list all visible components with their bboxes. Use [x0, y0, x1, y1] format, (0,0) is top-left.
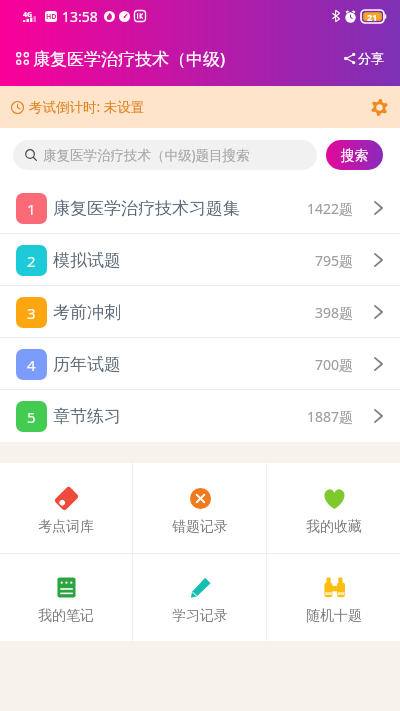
staticText: 随机十题	[306, 607, 362, 625]
staticText: 我的笔记	[38, 607, 94, 625]
staticText: 搜索	[341, 147, 368, 164]
button[interactable]: Settings	[368, 96, 390, 118]
button[interactable]: 错题记录	[133, 463, 266, 554]
button[interactable]: 我的笔记	[0, 554, 132, 641]
button[interactable]: 学习记录	[133, 554, 266, 641]
staticText: 章节练习	[53, 406, 121, 427]
button[interactable]: 康复医学治疗技术（中级)题目搜索	[13, 140, 317, 170]
staticText: 795题	[315, 251, 354, 270]
staticText: 模拟试题	[53, 250, 121, 271]
button[interactable]: 5	[0, 390, 400, 442]
staticText: 学习记录	[172, 607, 228, 625]
staticText: 4G	[23, 10, 33, 20]
staticText: 1887题	[307, 407, 354, 426]
staticText: 考前冲刺	[53, 302, 121, 323]
staticText: 700题	[315, 355, 354, 374]
staticText: 13:58	[62, 7, 98, 26]
staticText: 21	[367, 11, 378, 23]
staticText: 考试倒计时: 未设置	[29, 98, 145, 116]
button[interactable]: 搜索	[326, 140, 383, 170]
staticText: 分享	[358, 50, 384, 66]
staticText: 4	[27, 355, 36, 375]
button[interactable]: 1	[0, 182, 400, 234]
staticText: 2	[27, 251, 36, 271]
staticText: 1422题	[307, 199, 354, 218]
staticText: 康复医学治疗技术（中级)	[33, 47, 226, 70]
staticText: 1	[27, 199, 36, 219]
staticText: HD	[46, 12, 57, 22]
staticText: 5	[27, 407, 36, 427]
staticText: 我的收藏	[306, 518, 362, 536]
staticText: 康复医学治疗技术（中级)题目搜索	[43, 146, 250, 164]
staticText: 398题	[315, 303, 354, 322]
staticText: 3	[27, 303, 36, 323]
button[interactable]: 3	[0, 286, 400, 338]
button[interactable]: 2	[0, 234, 400, 286]
button[interactable]: 考点词库	[0, 463, 132, 554]
button[interactable]: 4	[0, 338, 400, 390]
staticText: 历年试题	[53, 354, 121, 375]
button[interactable]: 我的收藏	[267, 463, 400, 554]
button[interactable]: 分享	[342, 44, 386, 72]
staticText: 错题记录	[172, 518, 228, 536]
staticText: 康复医学治疗技术习题集	[53, 198, 240, 219]
staticText: 考点词库	[38, 518, 94, 536]
button[interactable]: 考试倒计时: 未设置	[0, 86, 400, 128]
button[interactable]: 随机十题	[267, 554, 400, 641]
